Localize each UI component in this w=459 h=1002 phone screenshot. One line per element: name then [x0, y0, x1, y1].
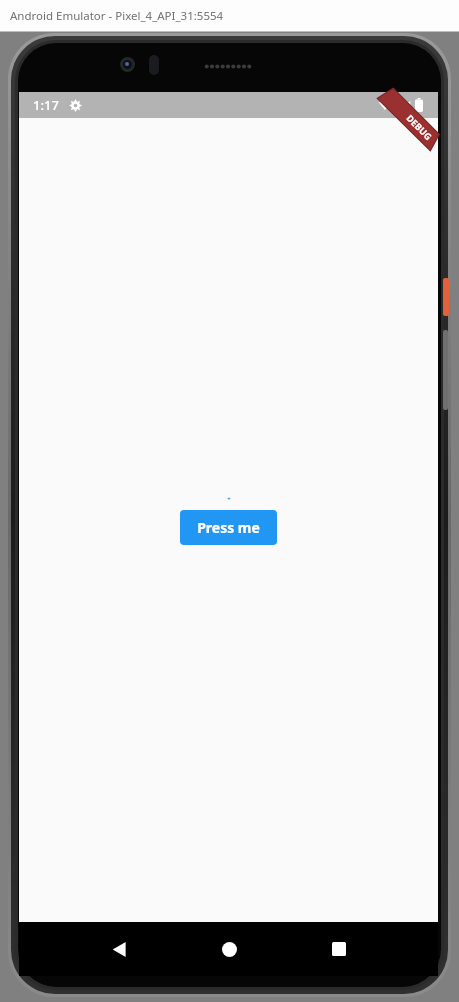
button[interactable]: Recent apps [319, 929, 359, 969]
staticText: Press me [197, 518, 260, 537]
staticText: DEBUG [404, 112, 435, 142]
staticText: + [227, 495, 231, 503]
button[interactable]: Press me [180, 510, 277, 545]
staticText: Android Emulator - Pixel_4_API_31:5554 [10, 8, 224, 24]
button[interactable]: Home [209, 929, 249, 969]
button[interactable]: Back [99, 929, 139, 969]
staticText: 1:17 [33, 96, 59, 114]
